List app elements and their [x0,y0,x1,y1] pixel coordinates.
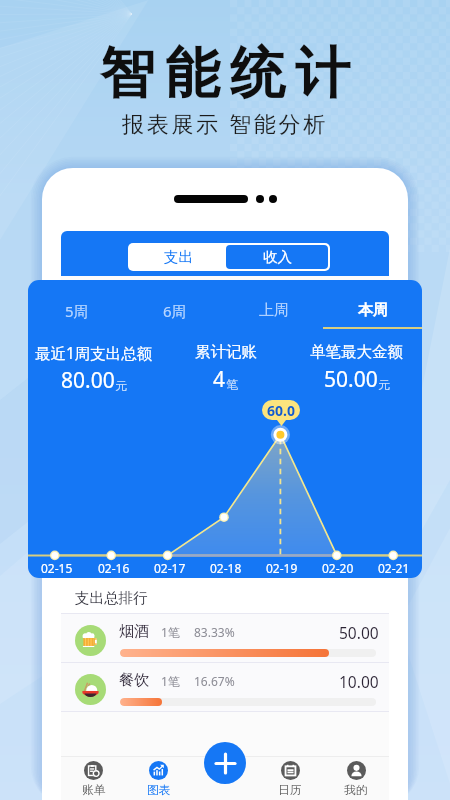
staticText: 1笔 [161,624,180,640]
button[interactable]: 图表 [126,756,191,800]
button[interactable]: 本周 [323,280,422,330]
staticText: 6周 [163,301,187,321]
staticText: 日历 [278,783,302,798]
button[interactable]: 账单 [61,756,126,800]
staticText: 4 [213,365,226,394]
staticText: 50.00 [339,622,379,643]
staticText: 02-16 [98,560,130,576]
staticText: 最近1周支出总额 [35,342,153,363]
staticText: 餐饮 [119,671,149,690]
button[interactable]: 餐饮 [61,663,389,711]
staticText: 智能统计 [95,39,355,108]
staticText: 累计记账 [195,342,257,362]
staticText: 60.0 [267,401,295,420]
staticText: 1笔 [161,673,180,689]
button[interactable]: 支出 [130,245,226,269]
staticText: 80.00 [61,366,115,395]
staticText: 元 [115,378,127,393]
button[interactable]: 日历 [257,756,323,800]
button[interactable]: 我的 [323,756,389,800]
staticText: 账单 [82,783,106,798]
staticText: 烟酒 [119,622,149,641]
staticText: 上周 [259,301,289,320]
staticText: 02-18 [210,560,242,576]
button[interactable]: 收入 [226,245,328,269]
staticText: 本周 [358,301,388,320]
button[interactable]: 6周 [126,280,224,330]
staticText: 02-20 [322,560,354,576]
staticText: 笔 [226,377,238,392]
staticText: 支出总排行 [75,589,148,607]
button[interactable]: 5周 [28,280,126,330]
staticText: 02-17 [154,560,186,576]
staticText: 16.67% [194,673,235,689]
button[interactable]: 烟酒 [61,614,389,662]
staticText: 报表展示 智能分析 [122,108,329,138]
button[interactable]: 上周 [224,280,323,330]
staticText: 我的 [344,783,368,798]
staticText: 元 [378,377,390,392]
staticText: 83.33% [194,624,235,640]
staticText: 02-15 [41,560,73,576]
staticText: 5周 [65,301,89,321]
staticText: 50.00 [324,365,378,394]
staticText: 单笔最大金额 [310,342,403,362]
staticText: 10.00 [339,671,379,692]
button[interactable]: Add record [204,742,246,784]
staticText: 02-19 [266,560,298,576]
staticText: 图表 [147,783,171,798]
staticText: 支出 [164,248,193,266]
staticText: 02-21 [378,560,410,576]
staticText: 收入 [263,248,292,266]
